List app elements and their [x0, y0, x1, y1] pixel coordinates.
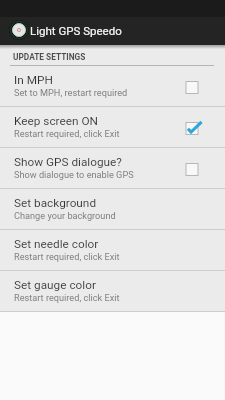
button[interactable]: App icon: [0, 0, 225, 45]
staticText: Set background: [14, 196, 97, 210]
staticText: Restart required, click Exit: [14, 128, 120, 139]
staticText: Restart required, click Exit: [14, 251, 120, 262]
button[interactable]: In MPH: [0, 66, 225, 106]
staticText: Light GPS Speedo: [30, 24, 122, 37]
other: App icon: [9, 20, 29, 40]
staticText: Set to MPH, restart required: [14, 87, 128, 98]
staticText: Change your background: [14, 210, 116, 221]
button[interactable]: Set gauge color: [0, 271, 225, 311]
staticText: Set needle color: [14, 237, 99, 251]
staticText: Keep screen ON: [14, 114, 98, 128]
staticText: In MPH: [14, 73, 53, 87]
staticText: Show dialogue to enable GPS: [14, 169, 134, 180]
staticText: UPDATE SETTINGS: [13, 52, 86, 62]
button[interactable]: Set needle color: [0, 230, 225, 270]
button[interactable]: Keep screen ON: [0, 107, 225, 147]
staticText: Set gauge color: [14, 278, 96, 292]
button[interactable]: Show GPS dialogue?: [0, 148, 225, 188]
staticText: Show GPS dialogue?: [14, 155, 122, 169]
button[interactable]: Set background: [0, 189, 225, 229]
staticText: Restart required, click Exit: [14, 292, 120, 303]
